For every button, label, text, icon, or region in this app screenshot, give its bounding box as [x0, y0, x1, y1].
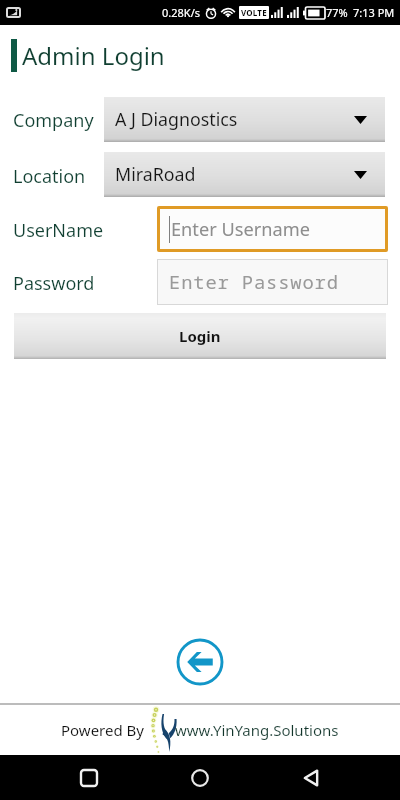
staticText: A J Diagnostics — [115, 107, 238, 131]
staticText: Admin Login — [22, 39, 165, 72]
staticText: Enter Username — [171, 217, 310, 242]
staticText: Login — [179, 326, 221, 346]
staticText: MiraRoad — [115, 162, 196, 186]
staticText: Location — [13, 164, 86, 189]
staticText: 0.28K/s — [162, 5, 200, 20]
staticText: www.YinYang.Solutions — [175, 720, 339, 740]
button[interactable]: Back — [174, 636, 226, 688]
button[interactable]: Enter Password — [158, 260, 387, 304]
staticText: 77% — [326, 5, 348, 20]
button[interactable]: A J Diagnostics — [104, 97, 385, 142]
staticText: Password — [13, 271, 95, 296]
staticText: Enter Password — [169, 269, 339, 295]
staticText: Powered By — [61, 720, 144, 740]
button[interactable]: Recents — [67, 756, 111, 800]
staticText: 7:13 PM — [353, 5, 395, 20]
button[interactable]: MiraRoad — [104, 152, 385, 197]
button[interactable]: Home — [178, 756, 222, 800]
staticText: UserName — [13, 218, 104, 243]
button[interactable]: Enter Username — [160, 209, 385, 249]
staticText: VOLTE — [241, 7, 267, 18]
staticText: Company — [13, 108, 94, 133]
button[interactable]: Login — [14, 313, 386, 359]
button[interactable]: Back — [289, 756, 333, 800]
